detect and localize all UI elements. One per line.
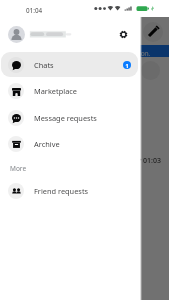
button[interactable]: New message <box>143 22 163 42</box>
button[interactable]: Marketplace <box>1 78 138 103</box>
staticText: Friend requests <box>34 186 89 196</box>
staticText: Chats <box>34 60 54 70</box>
button[interactable]: Profile <box>8 26 25 43</box>
staticText: Message requests <box>34 113 97 123</box>
staticText: 01:04 <box>26 6 43 15</box>
button[interactable]: Message requests <box>1 105 138 130</box>
staticText: on. <box>141 49 151 57</box>
staticText: More <box>10 164 27 173</box>
staticText: Marketplace <box>34 86 77 96</box>
button[interactable]: Archive <box>1 131 138 156</box>
button[interactable]: Settings <box>115 26 131 42</box>
staticText: Archive <box>34 139 60 149</box>
button[interactable]: Chats <box>1 52 138 77</box>
staticText: 01:03 <box>143 156 161 166</box>
button[interactable]: Friend requests <box>1 178 138 203</box>
staticText: 1 <box>125 62 129 69</box>
